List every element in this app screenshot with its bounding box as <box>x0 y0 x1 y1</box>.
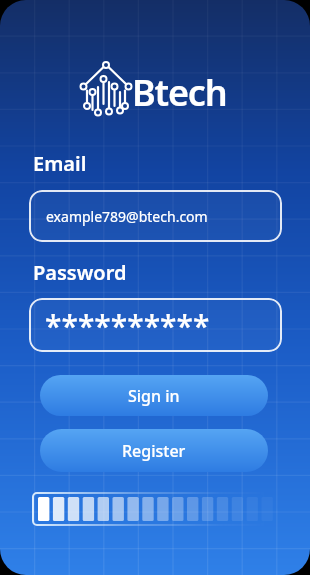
staticText: Register <box>122 440 186 462</box>
staticText: example789@btech.com <box>46 207 208 226</box>
button[interactable]: Sign in <box>40 375 268 416</box>
staticText: Sign in <box>128 385 180 407</box>
staticText: Password <box>33 259 127 286</box>
staticText: Btech <box>132 68 227 117</box>
staticText: ********** <box>45 305 210 346</box>
button[interactable]: Register <box>40 429 268 472</box>
button[interactable]: example789@btech.com <box>29 190 282 242</box>
button[interactable]: ********** <box>29 298 282 352</box>
staticText: Email <box>33 150 87 177</box>
